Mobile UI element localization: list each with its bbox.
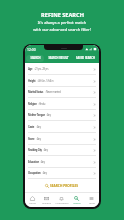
button[interactable]: Residing City <box>25 144 99 156</box>
button[interactable]: Marital Status <box>25 86 99 98</box>
staticText: Height <box>28 79 36 83</box>
staticText: Religion <box>28 102 37 106</box>
staticText: Residing City <box>28 148 42 152</box>
button[interactable]: SAVED SEARCH <box>72 53 99 63</box>
staticText: SEARCH PROFILES <box>50 184 79 188</box>
staticText: Occupation <box>28 171 41 175</box>
button[interactable]: Height <box>25 75 99 87</box>
staticText: Search <box>73 201 81 204</box>
staticText: : Any <box>36 137 41 141</box>
staticText: 12:00 <box>27 47 36 52</box>
staticText: Marital Status <box>28 90 44 94</box>
staticText: : Hindu <box>38 102 46 106</box>
button[interactable]: Religion <box>25 98 99 110</box>
staticText: : Any <box>42 171 47 175</box>
staticText: Age <box>28 67 33 71</box>
staticText: Caste <box>28 125 35 129</box>
button[interactable]: Occupation <box>25 167 99 179</box>
staticText: SEARCH <box>30 56 41 60</box>
button[interactable]: Home <box>25 193 39 207</box>
button[interactable]: Mother Tongue <box>25 109 99 121</box>
staticText: : Any <box>40 160 45 164</box>
staticText: : Never married <box>45 90 61 94</box>
button[interactable]: Caste <box>25 121 99 133</box>
button[interactable]: SEARCH <box>25 53 45 63</box>
staticText: Home <box>29 201 36 204</box>
staticText: REFINE SEARCH <box>41 11 84 19</box>
staticText: : 21 yrs - 28 yrs <box>34 67 49 71</box>
staticText: : 4 ft 6 in - 5 ft 4 in <box>37 79 54 83</box>
staticText: SAVED SEARCH <box>76 56 95 60</box>
button[interactable]: SEARCH PROFILES <box>25 179 99 192</box>
staticText: Mailbox <box>42 201 51 204</box>
staticText: : Any <box>46 113 51 117</box>
button[interactable]: Mailbox <box>39 193 54 207</box>
staticText: : Any <box>43 148 48 152</box>
button[interactable]: SEARCH RESULT <box>45 53 72 63</box>
staticText: SEARCH RESULT <box>48 56 69 60</box>
staticText: Stone <box>28 137 35 141</box>
staticText: : Any <box>36 125 41 129</box>
button[interactable]: Education <box>25 156 99 168</box>
staticText: Education <box>28 160 39 164</box>
button[interactable]: Search <box>69 193 84 207</box>
button[interactable]: More <box>84 193 99 207</box>
staticText: Notification <box>55 201 69 204</box>
button[interactable]: Stone <box>25 133 99 145</box>
button[interactable]: Notification <box>54 193 69 207</box>
button[interactable]: Age <box>25 63 99 75</box>
staticText: It's always a perfect match with our adv… <box>33 20 91 33</box>
staticText: More <box>89 201 95 204</box>
staticText: Mother Tongue <box>28 113 45 117</box>
